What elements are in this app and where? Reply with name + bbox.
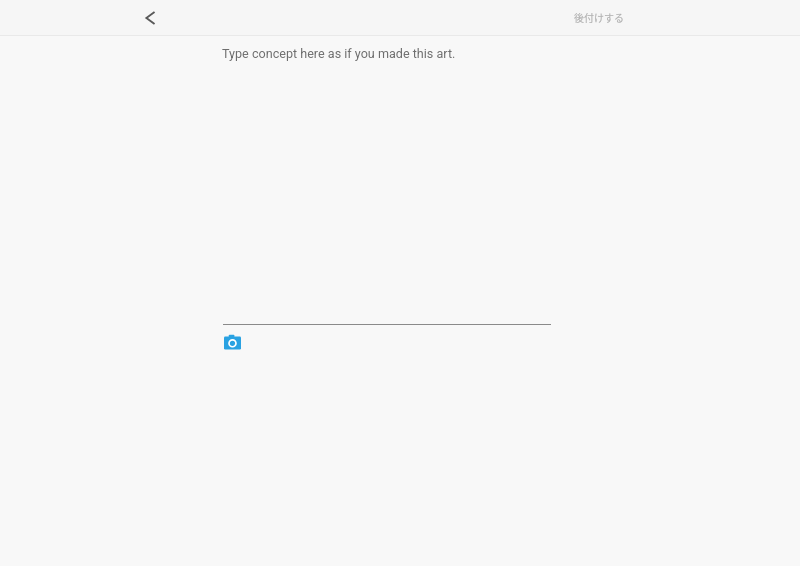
- staticText: 後付けする: [574, 10, 624, 24]
- button[interactable]: Add photo: [222, 332, 242, 352]
- button[interactable]: Back: [134, 1, 167, 34]
- staticText: Type concept here as if you made this ar…: [222, 46, 456, 61]
- button[interactable]: 後付けする: [566, 0, 632, 34]
